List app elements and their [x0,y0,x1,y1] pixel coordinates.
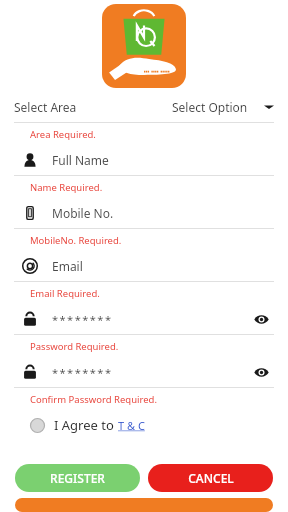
staticText: Mobile No. [52,205,114,221]
button[interactable]: Mobile No. [0,198,288,228]
staticText: Select Option [172,99,248,115]
button[interactable]: T & C [118,418,145,433]
button[interactable]: App logo [102,4,186,88]
button[interactable]: ******** [0,304,288,334]
staticText: ******** [52,365,113,380]
staticText: ******** [52,312,113,327]
staticText: Full Name [52,152,109,168]
staticText: Name Required. [30,181,103,194]
staticText: I Agree to [54,416,118,434]
staticText: CANCEL [188,470,234,486]
button[interactable]: Email [0,251,288,281]
staticText: Confirm Password Required. [30,393,157,406]
button[interactable]: ******** [0,357,288,387]
staticText: Email Required. [30,287,100,300]
staticText: Select Area [14,99,77,115]
button[interactable]: I Agree to [0,410,288,440]
button[interactable]: REGISTER [15,464,140,492]
button[interactable]: Show password [252,363,270,381]
button[interactable]: CANCEL [148,464,273,492]
staticText: Area Required. [30,128,96,141]
staticText: REGISTER [50,470,105,486]
button[interactable]: Show password [252,310,270,328]
staticText: Email [52,258,83,274]
staticText: Password Required. [30,340,119,353]
staticText: MobileNo. Required. [30,234,122,247]
button[interactable]: Select Area [0,92,288,122]
button[interactable]: Full Name [0,145,288,175]
button[interactable] [15,498,273,512]
